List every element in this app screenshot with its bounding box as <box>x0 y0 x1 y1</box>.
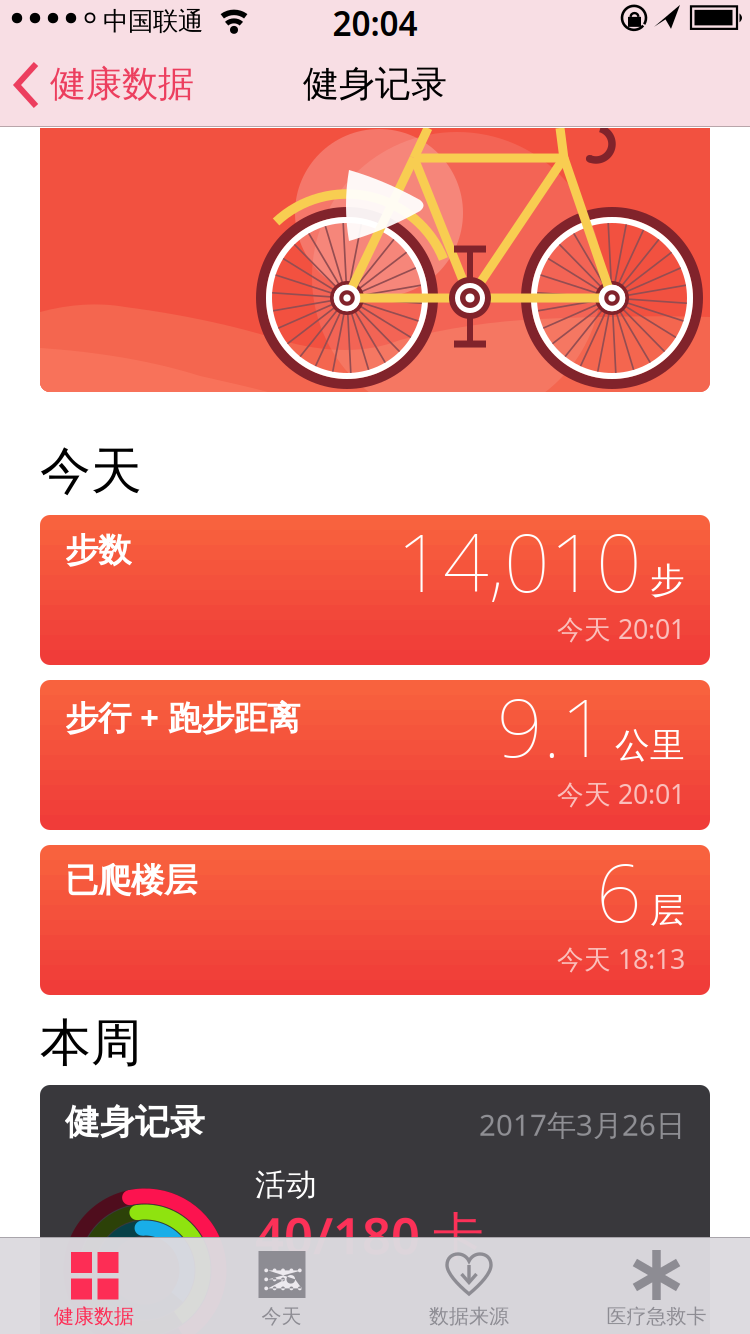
staticText: 健身记录 <box>65 1101 205 1144</box>
staticText: 20:04 <box>332 1 417 45</box>
staticText: 9.1 <box>497 673 607 779</box>
button[interactable]: 健康数据 <box>0 0 144 44</box>
staticText: 层 <box>650 889 685 932</box>
staticText: 步行 + 跑步距离 <box>65 695 300 739</box>
staticText: 14,010 <box>397 508 642 614</box>
button[interactable]: 步数 <box>40 515 710 665</box>
staticText: 健身记录 <box>303 62 447 106</box>
button[interactable]: 数据来源 <box>375 1240 563 1334</box>
staticText: 健康数据 <box>54 1304 134 1329</box>
staticText: 公里 <box>615 724 685 767</box>
staticText: 40/180 卡 <box>255 1201 484 1268</box>
staticText: 数据来源 <box>429 1304 509 1329</box>
button[interactable]: 医疗急救卡 <box>562 1240 750 1334</box>
staticText: 今天 20:01 <box>557 776 685 811</box>
staticText: 中国联通 <box>103 6 203 37</box>
button[interactable]: 今天 <box>187 1240 375 1334</box>
staticText: 已爬楼层 <box>65 860 197 901</box>
button[interactable]: 健身记录 <box>40 1085 710 1334</box>
staticText: 6 <box>596 838 642 944</box>
staticText: 健康数据 <box>50 62 194 106</box>
staticText: 今天 20:01 <box>557 611 685 646</box>
staticText: 步数 <box>65 530 131 571</box>
button[interactable] <box>40 128 710 392</box>
staticText: 本周 <box>40 1012 142 1074</box>
button[interactable]: 已爬楼层 <box>40 845 710 995</box>
button[interactable]: 步行 + 跑步距离 <box>40 680 710 830</box>
staticText: 活动 <box>255 1166 317 1204</box>
staticText: 今天 18:13 <box>557 941 685 976</box>
staticText: 今天 <box>40 440 142 502</box>
button[interactable]: 健康数据 <box>0 1240 188 1334</box>
staticText: 2017年3月26日 <box>479 1105 685 1144</box>
staticText: 步 <box>650 559 685 602</box>
staticText: 今天 <box>261 1304 301 1329</box>
staticText: 医疗急救卡 <box>606 1304 706 1329</box>
